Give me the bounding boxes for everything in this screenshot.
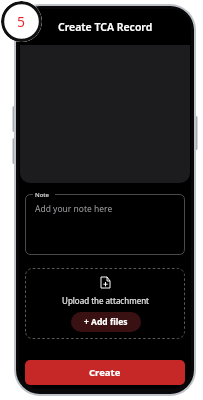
staticText: Note xyxy=(35,191,50,199)
other: Upload file xyxy=(100,276,111,289)
staticText: Create TCA Record xyxy=(58,20,153,34)
button[interactable]: Note xyxy=(25,194,185,255)
button[interactable]: + Add files xyxy=(71,312,141,332)
staticText: Upload the attachment xyxy=(62,295,149,306)
staticText: Add your note here xyxy=(35,203,113,215)
button[interactable]: Create xyxy=(25,360,185,385)
staticText: 5 xyxy=(17,12,26,31)
staticText: Create xyxy=(89,366,121,379)
staticText: + Add files xyxy=(84,316,128,328)
button[interactable]: Upload file xyxy=(25,268,185,339)
